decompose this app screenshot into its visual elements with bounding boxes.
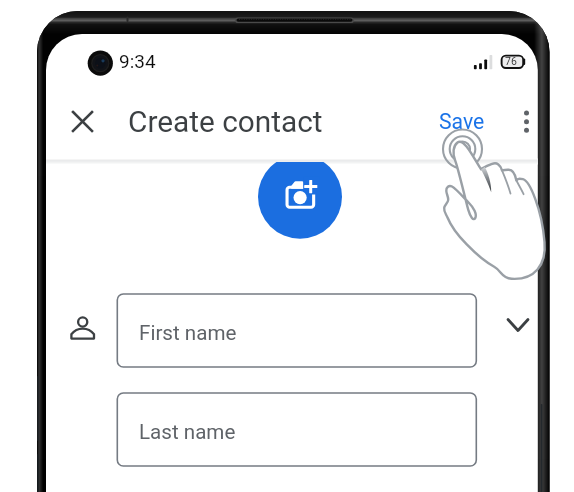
button[interactable]: First name xyxy=(117,294,476,367)
button[interactable]: Add photo xyxy=(258,158,342,242)
staticText: Create contact xyxy=(128,104,323,139)
staticText: Last name xyxy=(139,420,236,444)
button[interactable]: Save xyxy=(429,101,494,141)
button[interactable]: Expand name fields xyxy=(494,301,542,349)
staticText: 9:34 xyxy=(119,50,156,72)
staticText: 76 xyxy=(505,55,517,67)
button[interactable]: More options xyxy=(503,97,551,145)
staticText: First name xyxy=(139,321,237,345)
button[interactable]: Close xyxy=(58,97,106,145)
button[interactable]: Last name xyxy=(117,393,476,466)
staticText: Save xyxy=(439,109,485,134)
